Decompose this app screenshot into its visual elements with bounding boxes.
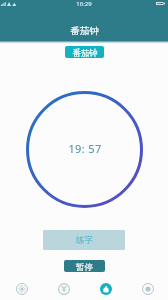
staticText: 暂停	[76, 262, 93, 272]
button[interactable]: 番茄钟	[65, 46, 104, 58]
button[interactable]: 练字	[43, 230, 125, 250]
staticText: 番茄钟	[70, 25, 99, 37]
button[interactable]: Habits	[0, 274, 42, 300]
button[interactable]: Profile	[126, 274, 168, 300]
staticText: 19: 57	[68, 141, 102, 156]
staticText: 16:29	[76, 0, 92, 7]
button[interactable]: Finance	[42, 274, 84, 300]
staticText: 练字	[76, 235, 93, 246]
staticText: 番茄钟	[72, 48, 98, 58]
button[interactable]: 暂停	[64, 260, 105, 272]
button[interactable]: Timer	[84, 274, 126, 300]
